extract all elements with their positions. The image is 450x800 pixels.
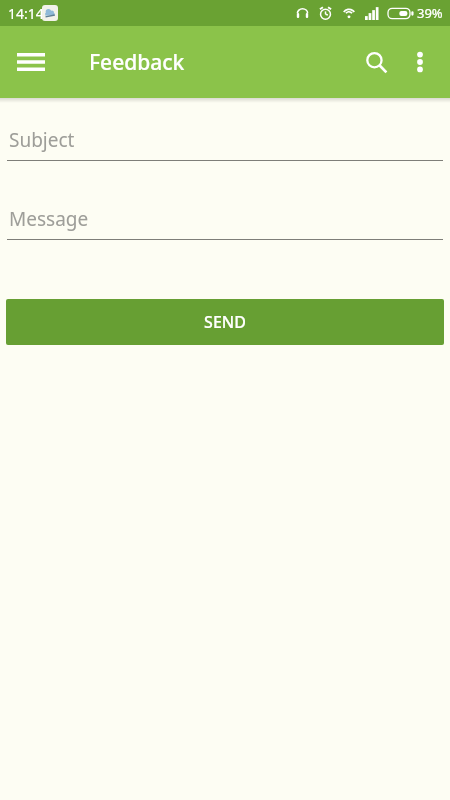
staticText: 14:14 <box>8 4 44 23</box>
button[interactable]: Search <box>354 40 398 84</box>
button[interactable]: More options <box>398 40 442 84</box>
staticText: SEND <box>204 311 246 333</box>
staticText: Message <box>9 206 89 232</box>
button[interactable]: Open navigation drawer <box>11 42 51 82</box>
button[interactable]: Message <box>7 206 443 240</box>
button[interactable]: SEND <box>6 299 444 345</box>
button[interactable]: Subject <box>7 127 443 161</box>
staticText: Feedback <box>89 48 185 77</box>
staticText: Subject <box>9 127 75 153</box>
staticText: 39% <box>417 4 443 22</box>
